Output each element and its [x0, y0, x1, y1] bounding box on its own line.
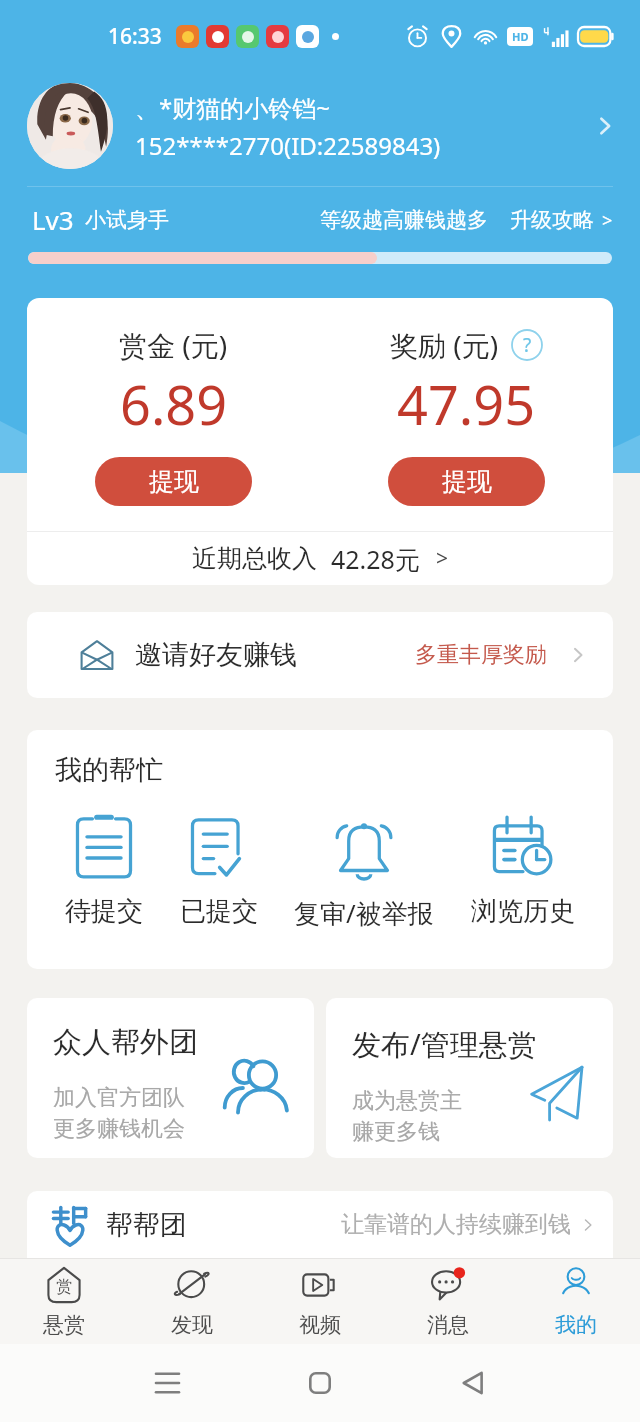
button[interactable]: 提现	[95, 457, 252, 506]
staticText: 浏览历史	[471, 895, 575, 928]
button[interactable]: 邀请好友赚钱	[27, 612, 613, 698]
staticText: 更多赚钱机会	[53, 1115, 185, 1143]
staticText: 让靠谱的人持续赚到钱	[341, 1210, 571, 1239]
staticText: 赏	[56, 1277, 72, 1297]
button[interactable]: 众人帮外团	[27, 998, 314, 1158]
staticText: 提现	[442, 466, 492, 497]
staticText: 多重丰厚奖励	[415, 641, 547, 669]
staticText: 提现	[149, 466, 199, 497]
staticText: 发布/管理悬赏	[352, 1024, 537, 1064]
button[interactable]: Back	[444, 1355, 500, 1411]
staticText: 152****2770(ID:22589843)	[135, 129, 441, 162]
button[interactable]: 升级攻略	[510, 207, 613, 233]
staticText: 众人帮外团	[53, 1024, 198, 1061]
staticText: 、*财猫的小铃铛~	[135, 91, 330, 124]
staticText: >	[602, 208, 613, 233]
staticText: 邀请好友赚钱	[135, 638, 297, 672]
staticText: 小试身手	[85, 207, 169, 233]
staticText: >	[436, 544, 449, 573]
staticText: 成为悬赏主	[352, 1087, 462, 1115]
button[interactable]: 发现	[128, 1258, 256, 1344]
staticText: 升级攻略	[510, 207, 594, 233]
button[interactable]: 我的	[512, 1258, 640, 1344]
staticText: 发现	[171, 1312, 213, 1338]
button[interactable]: 已提交	[178, 811, 260, 928]
button[interactable]: 浏览历史	[469, 811, 577, 928]
staticText: 帮帮团	[106, 1208, 187, 1242]
button[interactable]: 视频	[256, 1258, 384, 1344]
button[interactable]: Recents	[139, 1355, 195, 1411]
button[interactable]: Help	[511, 329, 543, 361]
staticText: 16:33	[108, 22, 162, 51]
button[interactable]: Home	[292, 1355, 348, 1411]
button[interactable]: 提现	[388, 457, 545, 506]
staticText: 近期总收入	[192, 543, 317, 574]
button[interactable]: 待提交	[63, 811, 145, 928]
staticText: 已提交	[180, 895, 258, 928]
button[interactable]: 近期总收入	[27, 532, 613, 585]
staticText: ?	[523, 332, 532, 358]
staticText: HD	[512, 29, 529, 44]
button[interactable]: 、*财猫的小铃铛~	[27, 72, 618, 180]
staticText: 47.95	[397, 367, 536, 441]
staticText: 奖励 (元)	[390, 326, 499, 364]
button[interactable]: 赏	[0, 1258, 128, 1344]
button[interactable]: 帮帮团	[27, 1191, 613, 1258]
staticText: 待提交	[65, 895, 143, 928]
staticText: 悬赏	[43, 1312, 85, 1338]
staticText: 等级越高赚钱越多	[320, 207, 488, 233]
staticText: 复审/被举报	[294, 895, 434, 931]
button[interactable]: 发布/管理悬赏	[326, 998, 613, 1158]
staticText: 加入官方团队	[53, 1084, 185, 1112]
staticText: 赚更多钱	[352, 1118, 440, 1146]
staticText: 赏金 (元)	[119, 326, 228, 364]
staticText: 6.89	[120, 367, 228, 441]
staticText: 我的帮忙	[55, 753, 163, 787]
staticText: 视频	[299, 1312, 341, 1338]
staticText: 我的	[555, 1312, 597, 1338]
staticText: Lv3	[32, 202, 74, 237]
staticText: 42.28元	[331, 542, 420, 576]
staticText: 消息	[427, 1312, 469, 1338]
button[interactable]: 消息	[384, 1258, 512, 1344]
button[interactable]: 复审/被举报	[292, 811, 436, 931]
